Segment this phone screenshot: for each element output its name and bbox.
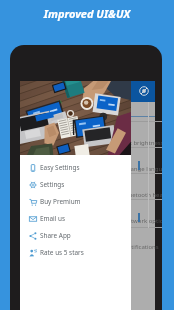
staticText: Easy Settings	[40, 163, 80, 172]
staticText: Rate us 5 stars	[40, 248, 84, 257]
button[interactable]: Rate us 5 stars	[20, 244, 131, 261]
button[interactable]: Easy Settings	[20, 159, 131, 176]
staticText: Improved UI&UX	[0, 6, 174, 21]
staticText: Change language	[123, 165, 162, 173]
staticText: Set brightness	[123, 139, 162, 147]
button[interactable]: Set brightness	[20, 134, 155, 160]
button[interactable]: Settings	[20, 176, 131, 193]
staticText: Network options	[123, 217, 162, 225]
button[interactable]: Bluetooth headset	[20, 186, 155, 212]
staticText: Notifications	[123, 243, 159, 251]
staticText: Bluetooth headset	[123, 191, 162, 199]
staticText: Settings	[40, 180, 65, 189]
button[interactable]: Change language	[20, 160, 155, 186]
other: App logo	[139, 86, 149, 96]
button[interactable]: Share App	[20, 227, 131, 244]
staticText: Share App	[40, 231, 71, 240]
button[interactable]: Notifications	[20, 238, 155, 264]
button[interactable]: Network options	[20, 212, 155, 238]
staticText: Buy Premium	[40, 197, 81, 206]
button[interactable]: Buy Premium	[20, 193, 131, 210]
staticText: Email us	[40, 214, 66, 223]
button[interactable]: Email us	[20, 210, 131, 227]
